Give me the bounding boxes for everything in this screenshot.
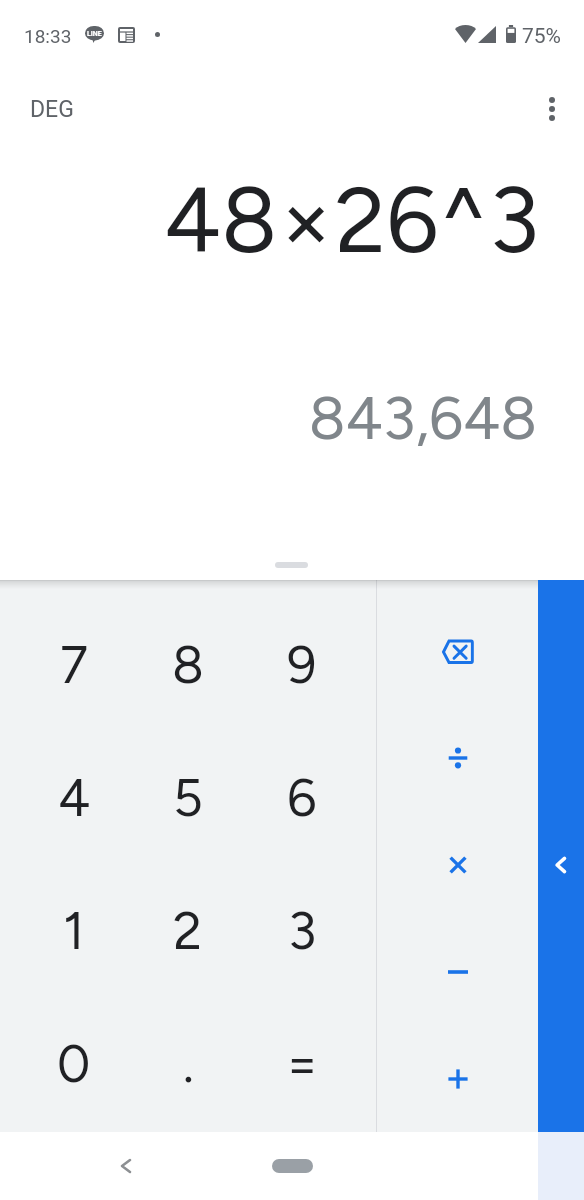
staticText: 3	[288, 900, 317, 962]
staticText: 4	[58, 767, 91, 829]
button[interactable]: .	[131, 997, 245, 1130]
staticText: 75%	[522, 24, 561, 49]
button[interactable]: DEG	[18, 86, 86, 133]
button[interactable]: 9	[245, 598, 359, 731]
button[interactable]: Add	[376, 1025, 538, 1132]
staticText: 9	[287, 634, 317, 696]
staticText: .	[183, 1033, 194, 1095]
button[interactable]: 0	[17, 997, 131, 1130]
button[interactable]: Back	[100, 1140, 152, 1192]
button[interactable]: 4	[17, 731, 131, 864]
staticText: 843,648	[0, 382, 537, 454]
button[interactable]: Subtract	[376, 918, 538, 1025]
staticText: 7	[60, 634, 88, 696]
staticText: 18:33	[24, 25, 72, 47]
staticText: 0	[57, 1033, 91, 1095]
button[interactable]: 2	[131, 864, 245, 997]
button[interactable]: 3	[245, 864, 359, 997]
staticText: 5	[173, 767, 203, 829]
staticText: 2	[173, 900, 203, 962]
button[interactable]: Multiply	[376, 811, 538, 918]
staticText: 1	[63, 900, 85, 962]
button[interactable]: Show advanced pad	[538, 580, 584, 1132]
button[interactable]: 1	[17, 864, 131, 997]
button[interactable]: Divide	[376, 705, 538, 811]
button[interactable]: Home	[272, 1159, 313, 1173]
staticText: =	[286, 1033, 319, 1095]
button[interactable]: 7	[17, 598, 131, 731]
staticText: 48×26^3	[0, 165, 539, 275]
button[interactable]: More options	[528, 85, 576, 133]
button[interactable]: =	[245, 997, 359, 1130]
staticText: DEG	[30, 96, 74, 123]
staticText: 6	[287, 767, 317, 829]
staticText: LINE	[87, 30, 102, 38]
button[interactable]: 8	[131, 598, 245, 731]
staticText: 8	[172, 634, 204, 696]
button[interactable]: Delete	[376, 599, 538, 705]
button[interactable]: 5	[131, 731, 245, 864]
button[interactable]: 6	[245, 731, 359, 864]
